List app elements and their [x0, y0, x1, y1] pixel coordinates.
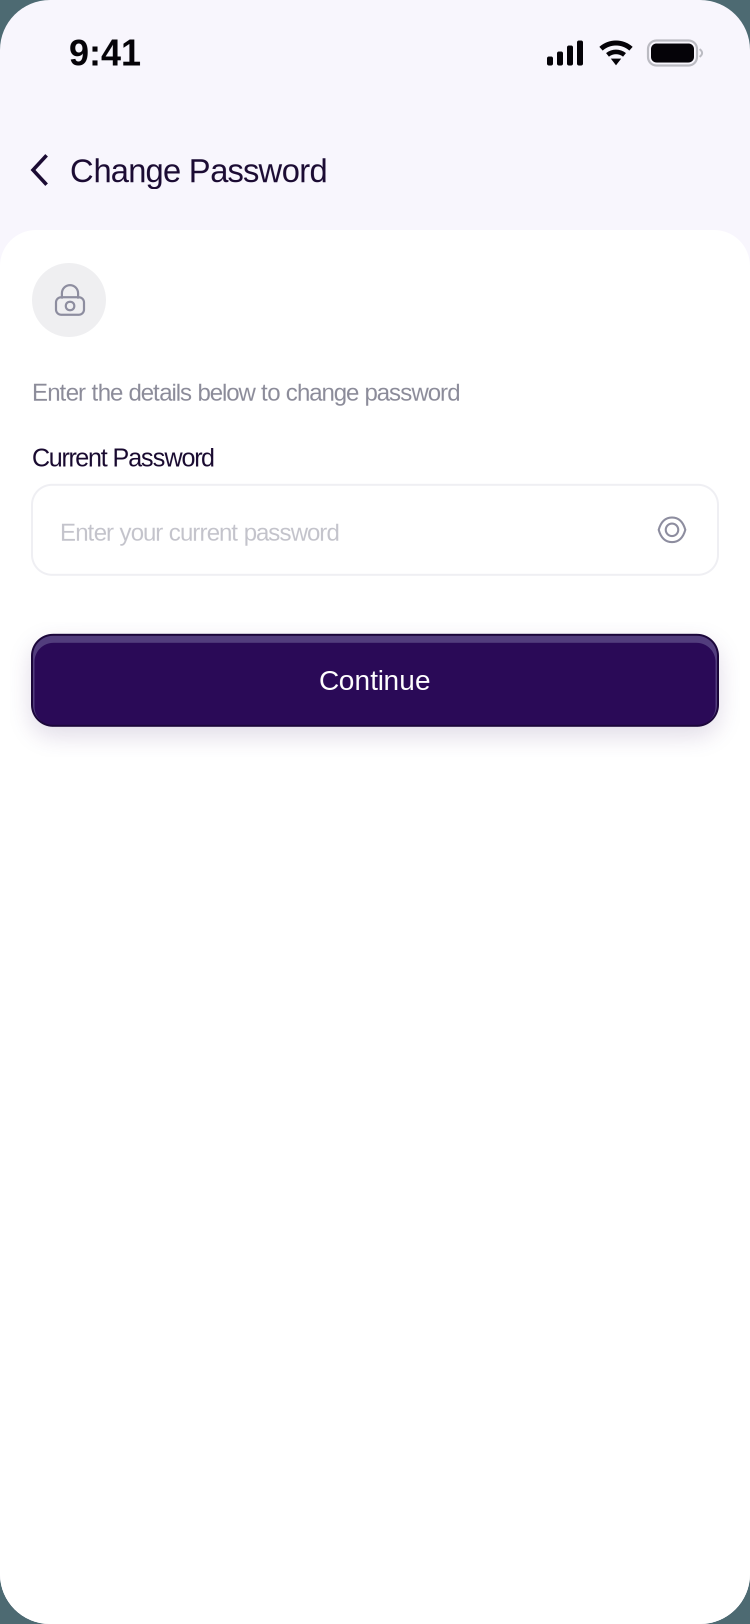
button[interactable]: Show password: [655, 510, 689, 550]
staticText: Change Password: [70, 153, 328, 189]
staticText: Enter your current password: [60, 519, 339, 546]
button[interactable]: Continue: [32, 635, 718, 726]
button[interactable]: Change Password: [0, 106, 750, 230]
staticText: Enter the details below to change passwo…: [32, 379, 460, 406]
staticText: Continue: [319, 665, 431, 696]
staticText: 9:41: [69, 33, 141, 73]
staticText: Current Password: [32, 444, 215, 472]
